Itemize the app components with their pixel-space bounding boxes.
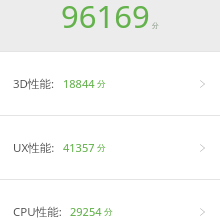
other: More details — [200, 208, 205, 216]
other: More details — [200, 80, 205, 88]
button[interactable]: 3D性能: — [0, 52, 220, 115]
staticText: 分 — [97, 79, 106, 90]
staticText: 分 — [104, 207, 113, 218]
staticText: 分 — [97, 143, 106, 154]
staticText: 分 — [152, 21, 159, 30]
staticText: 3D性能: — [13, 76, 55, 92]
staticText: CPU性能: — [13, 204, 62, 220]
other: More details — [200, 144, 205, 152]
button[interactable]: CPU性能: — [0, 180, 220, 220]
staticText: 41357 — [63, 140, 95, 155]
staticText: UX性能: — [13, 140, 55, 156]
staticText: 96169 — [61, 0, 150, 37]
staticText: 18844 — [63, 76, 95, 91]
staticText: 29254 — [70, 204, 102, 219]
button[interactable]: UX性能: — [0, 116, 220, 179]
